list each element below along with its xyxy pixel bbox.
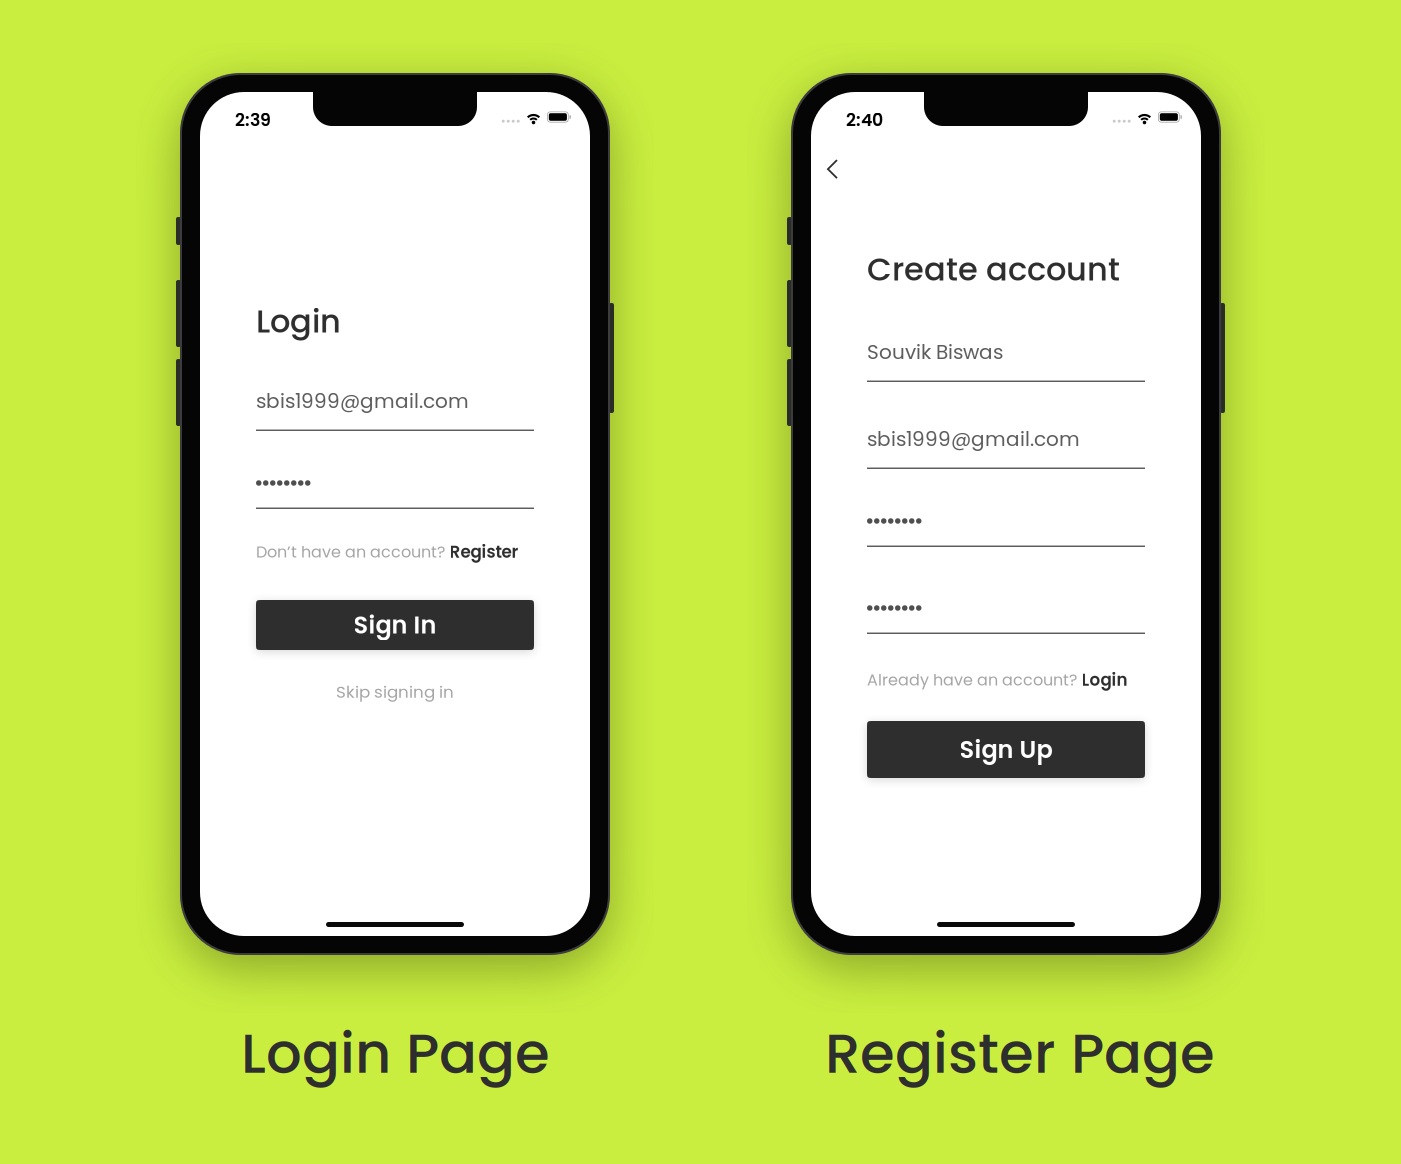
staticText: Sign In: [353, 608, 436, 642]
staticText: sbis1999@gmail.com: [256, 387, 469, 415]
button[interactable]: Back: [815, 152, 849, 186]
button[interactable]: Sign In: [256, 600, 534, 650]
staticText: Login Page: [241, 1014, 550, 1092]
staticText: Register Page: [825, 1014, 1215, 1092]
staticText: Souvik Biswas: [867, 338, 1003, 366]
button[interactable]: Don’t have an account?: [256, 542, 518, 562]
staticText: Skip signing in: [336, 680, 454, 704]
staticText: Register: [449, 540, 518, 564]
staticText: 2:39: [235, 108, 271, 132]
button[interactable]: Skip signing in: [256, 682, 534, 702]
staticText: Login: [256, 299, 341, 344]
staticText: Sign Up: [959, 733, 1052, 766]
staticText: Create account: [867, 247, 1120, 292]
staticText: Login: [1081, 668, 1127, 692]
staticText: 2:40: [846, 108, 883, 132]
staticText: Already have an account?: [867, 669, 1077, 691]
button[interactable]: Already have an account?: [867, 670, 1127, 690]
staticText: sbis1999@gmail.com: [867, 425, 1080, 453]
button[interactable]: Sign Up: [867, 721, 1145, 778]
staticText: Don’t have an account?: [256, 541, 445, 563]
